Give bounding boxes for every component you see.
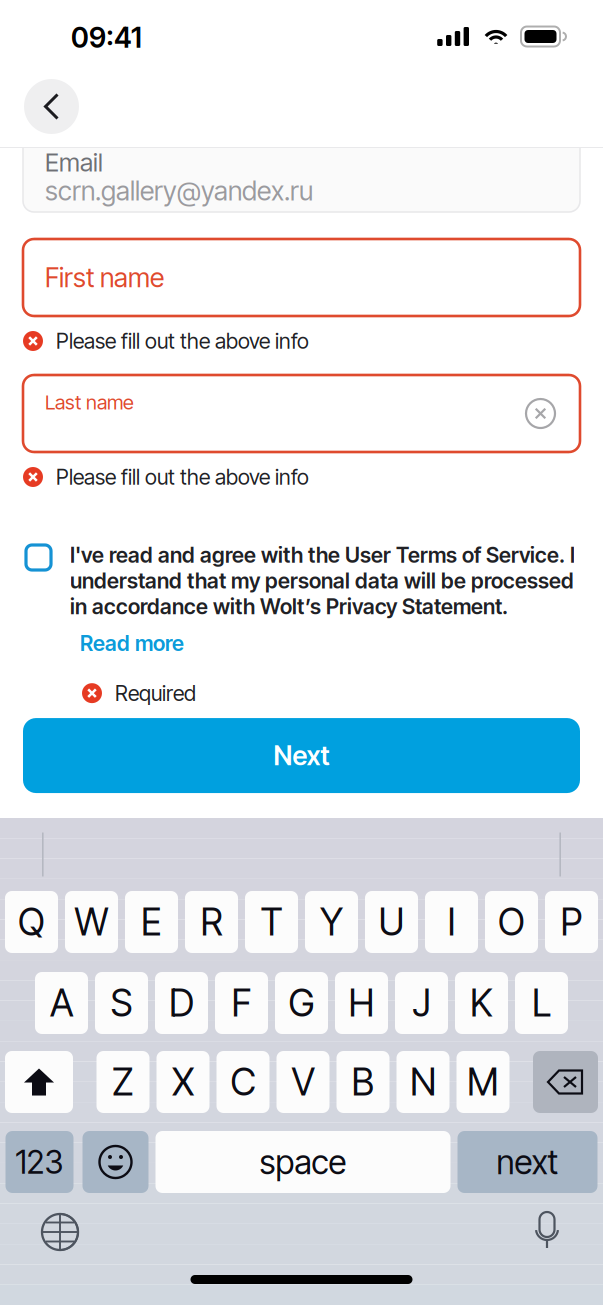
staticText: B — [351, 1059, 374, 1105]
button[interactable]: B — [336, 1051, 389, 1113]
button[interactable]: O — [485, 891, 538, 953]
staticText: understand that my personal data will be… — [70, 568, 574, 594]
button[interactable]: C — [216, 1051, 269, 1113]
button[interactable]: 123 — [5, 1131, 73, 1193]
button[interactable]: R — [185, 891, 238, 953]
button[interactable]: Dictate — [533, 1212, 603, 1252]
button[interactable]: Z — [96, 1051, 149, 1113]
staticText: A — [50, 980, 73, 1026]
button[interactable]: Y — [305, 891, 358, 953]
button[interactable]: Shift — [5, 1051, 73, 1113]
button[interactable]: P — [545, 891, 598, 953]
staticText: Next — [273, 739, 329, 772]
staticText: X — [172, 1059, 194, 1105]
button[interactable]: Delete — [533, 1051, 598, 1113]
staticText: T — [260, 899, 282, 945]
button[interactable]: next — [457, 1131, 597, 1193]
button[interactable]: K — [455, 972, 508, 1034]
staticText: U — [378, 899, 404, 945]
button[interactable]: I — [425, 891, 478, 953]
staticText: K — [470, 980, 493, 1026]
staticText: G — [288, 980, 314, 1026]
button[interactable]: F — [215, 972, 268, 1034]
staticText: scrn.gallery@yandex.ru — [45, 175, 313, 207]
button[interactable]: Next — [23, 718, 580, 793]
staticText: V — [291, 1059, 314, 1105]
staticText: H — [348, 980, 374, 1026]
button[interactable]: W — [65, 891, 118, 953]
staticText: C — [230, 1059, 255, 1105]
staticText: in accordance with Wolt’s Privacy Statem… — [70, 594, 508, 619]
button[interactable]: Back — [24, 79, 79, 134]
staticText: 123 — [15, 1143, 63, 1181]
button[interactable]: S — [95, 972, 148, 1034]
staticText: W — [74, 899, 108, 945]
staticText: S — [110, 980, 132, 1026]
staticText: Y — [320, 899, 343, 945]
button[interactable]: Clear text — [526, 399, 580, 428]
button[interactable]: T — [245, 891, 298, 953]
staticText: R — [200, 899, 222, 945]
button[interactable]: Read more — [70, 630, 184, 656]
button[interactable]: N — [396, 1051, 449, 1113]
staticText: Please fill out the above info — [56, 464, 309, 490]
staticText: Required — [115, 680, 196, 706]
staticText: next — [496, 1142, 558, 1182]
staticText: space — [259, 1142, 346, 1182]
staticText: D — [169, 980, 194, 1026]
staticText: M — [467, 1059, 499, 1105]
button[interactable]: M — [456, 1051, 509, 1113]
button[interactable]: Emoji — [82, 1131, 148, 1193]
staticText: L — [532, 980, 551, 1026]
button[interactable]: D — [155, 972, 208, 1034]
staticText: Z — [112, 1059, 134, 1105]
button[interactable]: G — [275, 972, 328, 1034]
button[interactable]: space — [155, 1131, 450, 1193]
button[interactable]: A — [35, 972, 88, 1034]
staticText: First name — [45, 261, 164, 294]
button[interactable]: Agree to terms — [23, 542, 70, 570]
staticText: 09:41 — [71, 21, 142, 54]
button[interactable]: Q — [5, 891, 58, 953]
staticText: F — [231, 980, 251, 1026]
staticText: I've read and agree with the User Terms … — [70, 542, 575, 568]
staticText: P — [560, 899, 582, 945]
button[interactable]: H — [335, 972, 388, 1034]
staticText: Read more — [80, 630, 184, 656]
button[interactable]: L — [515, 972, 568, 1034]
staticText: J — [412, 980, 430, 1026]
button[interactable]: J — [395, 972, 448, 1034]
button[interactable]: Switch keyboard — [0, 1214, 78, 1250]
button[interactable]: E — [125, 891, 178, 953]
staticText: Please fill out the above info — [56, 328, 309, 354]
staticText: O — [498, 899, 525, 945]
staticText: E — [141, 899, 162, 945]
staticText: Last name — [45, 390, 134, 414]
staticText: Q — [18, 899, 45, 945]
button[interactable]: X — [156, 1051, 209, 1113]
staticText: Email — [45, 147, 103, 178]
button[interactable]: U — [365, 891, 418, 953]
staticText: I — [447, 899, 455, 945]
staticText: N — [410, 1059, 436, 1105]
button[interactable]: V — [276, 1051, 329, 1113]
